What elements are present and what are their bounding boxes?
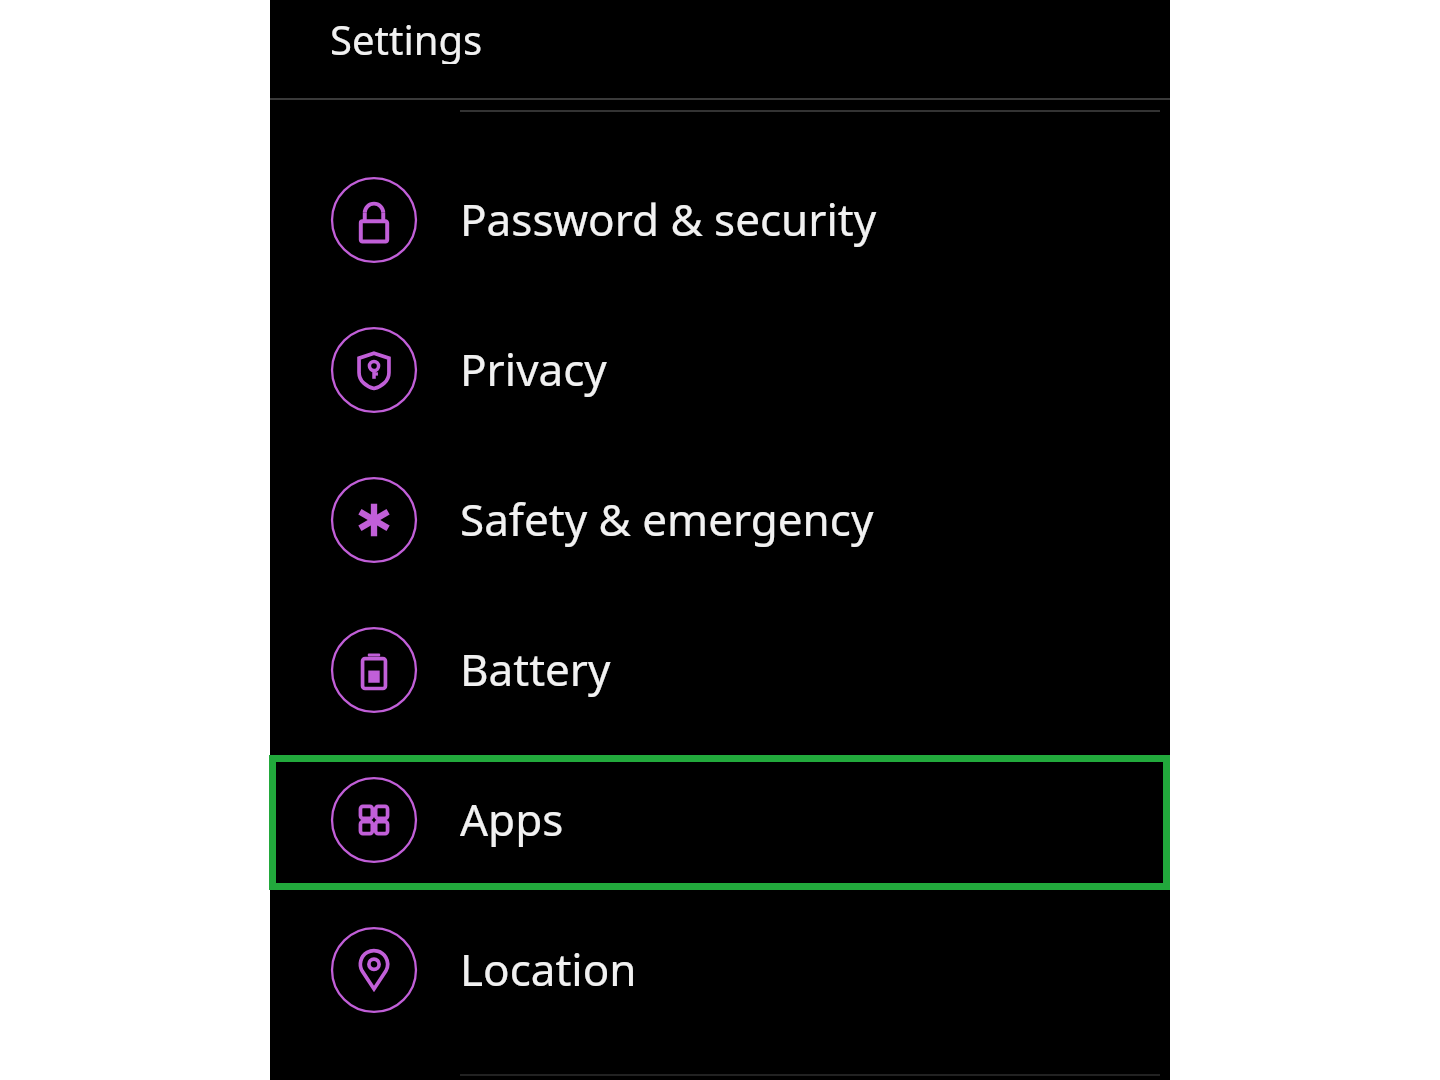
staticText: Password & security — [460, 189, 877, 249]
staticText: Battery — [460, 639, 611, 699]
staticText: Privacy — [460, 339, 607, 399]
staticText: Safety & emergency — [460, 489, 874, 549]
button[interactable]: Safety & emergency — [270, 445, 1170, 595]
staticText: Apps — [460, 789, 564, 849]
button[interactable]: Privacy — [270, 295, 1170, 445]
other: Apps highlighted — [269, 755, 1170, 890]
button[interactable]: Apps — [270, 745, 1170, 895]
button[interactable]: Settings — [330, 12, 730, 64]
button[interactable]: Battery — [270, 595, 1170, 745]
button[interactable]: Password & security — [270, 145, 1170, 295]
staticText: Settings — [330, 12, 483, 64]
staticText: Location — [460, 939, 637, 999]
button[interactable]: Location — [270, 895, 1170, 1045]
